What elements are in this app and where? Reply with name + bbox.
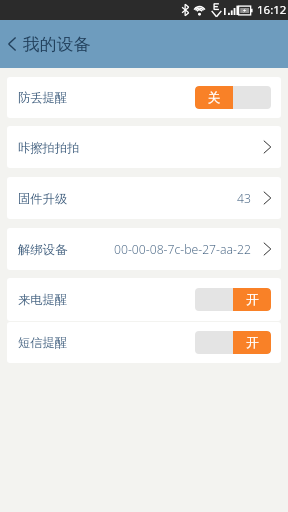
staticText: 开 <box>246 292 259 308</box>
staticText: 固件升级 <box>18 191 68 206</box>
staticText: 解绑设备 <box>18 242 68 257</box>
staticText: 防丢提醒 <box>18 90 68 105</box>
staticText: 开 <box>246 335 259 351</box>
button[interactable]: 防丢提醒 <box>7 77 281 118</box>
button[interactable]: 咔擦拍拍拍 <box>7 126 281 168</box>
staticText: 00-00-08-7c-be-27-aa-22 <box>114 241 251 258</box>
staticText: 我的设备 <box>23 34 91 55</box>
staticText: 短信提醒 <box>18 335 68 350</box>
staticText: 咔擦拍拍拍 <box>18 140 80 155</box>
staticText: 关 <box>208 90 221 106</box>
button[interactable]: Back <box>2 20 22 68</box>
button[interactable]: 固件升级 <box>7 177 281 219</box>
button[interactable]: 短信提醒 <box>7 322 281 363</box>
staticText: 43 <box>237 190 251 207</box>
staticText: 来电提醒 <box>18 292 68 307</box>
button[interactable]: 解绑设备 <box>7 228 281 270</box>
button[interactable]: 关 <box>195 86 271 109</box>
button[interactable]: 来电提醒 <box>7 278 281 321</box>
button[interactable]: 开 <box>195 331 271 354</box>
staticText: 16:12 <box>257 2 287 18</box>
button[interactable]: 开 <box>195 288 271 311</box>
